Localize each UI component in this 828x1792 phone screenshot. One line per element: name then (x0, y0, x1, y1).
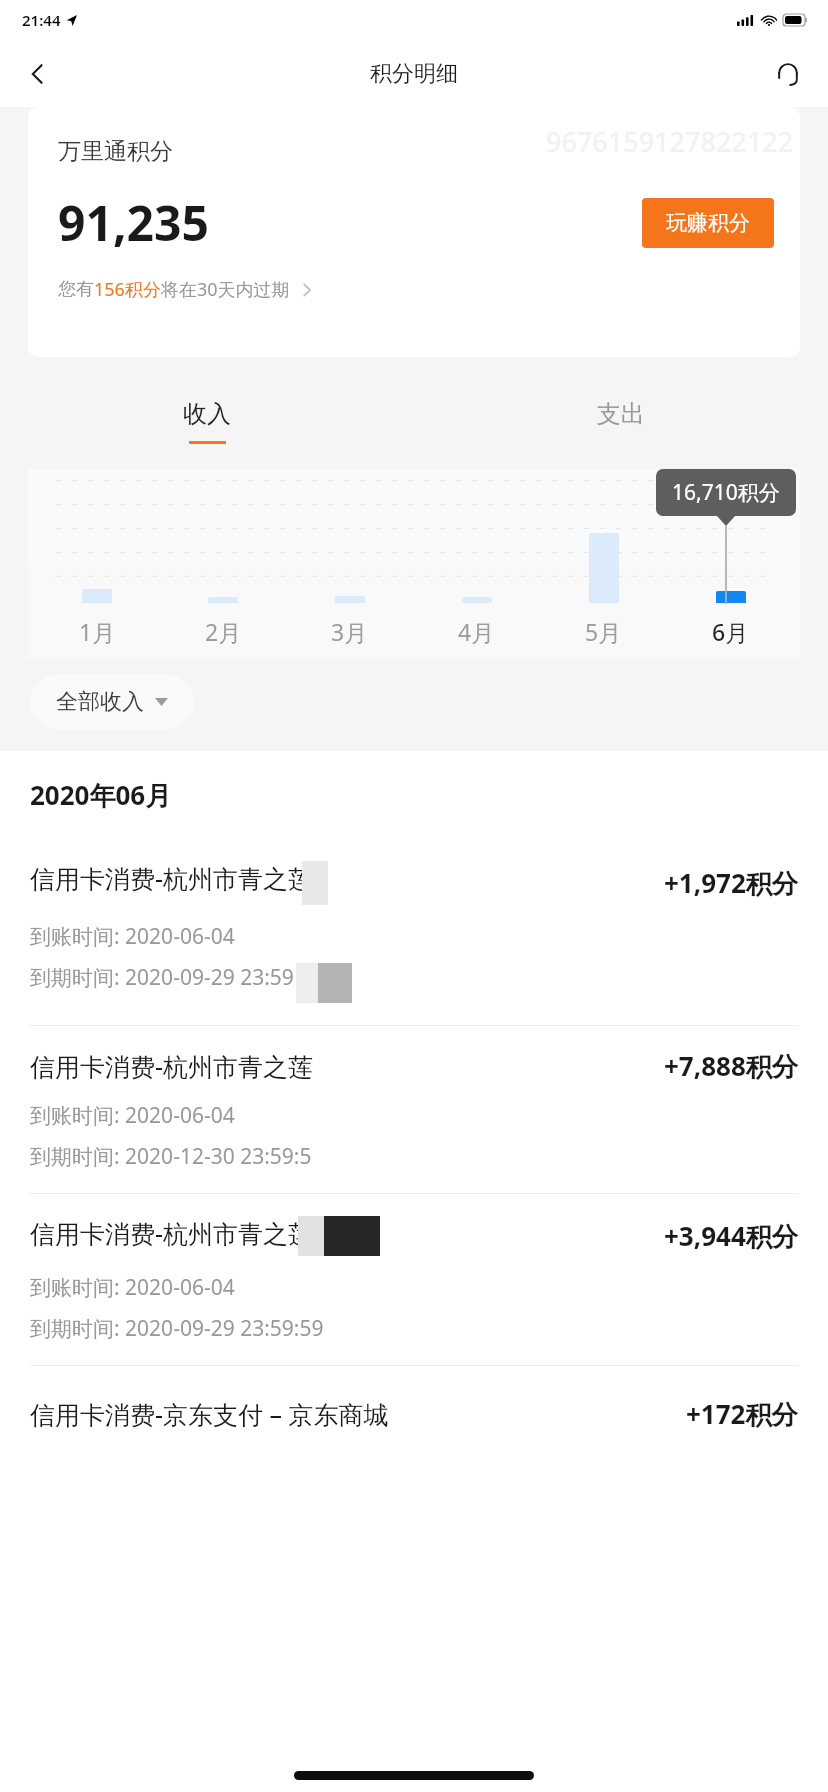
staticText: 将在30天内过期 (161, 277, 290, 302)
button[interactable]: 支出 (414, 383, 828, 459)
staticText: 5月 (585, 616, 622, 647)
button[interactable]: 信用卡消费-京东支付 – 京东商城 (0, 1396, 828, 1432)
button[interactable]: Customer service (760, 46, 816, 102)
staticText: 万里通积分 (58, 137, 173, 166)
staticText: 信用卡消费-京东支付 – 京东商城 (30, 1397, 389, 1431)
button[interactable]: 全部收入 (30, 675, 194, 729)
staticText: +172积分 (686, 1396, 798, 1432)
staticText: 16,710积分 (672, 478, 780, 507)
staticText: 21:44 (22, 10, 61, 30)
staticText: 2月 (205, 616, 242, 647)
staticText: 1月 (79, 616, 116, 647)
button[interactable]: 信用卡消费-杭州市青之莲· (0, 1194, 828, 1365)
staticText: 到期时间: 2020-09-29 23:59:59 (30, 1314, 324, 1343)
staticText: 到期时间: 2020-09-29 23:59 (30, 963, 294, 992)
staticText: 积分明细 (370, 60, 458, 88)
staticText: 156积分 (94, 277, 161, 302)
staticText: 信用卡消费-杭州市青之莲 (30, 1049, 314, 1083)
staticText: 6月 (712, 616, 749, 647)
staticText: 收入 (183, 399, 231, 429)
staticText: 4月 (458, 616, 495, 647)
staticText: 到期时间: 2020-12-30 23:59:5 (30, 1142, 312, 1171)
staticText: 2020年06月 (30, 777, 172, 813)
button[interactable]: 9676159127822122 (28, 107, 800, 357)
button[interactable]: 信用卡消费-杭州市青之莲 (0, 1026, 828, 1193)
staticText: 支出 (597, 399, 645, 429)
button[interactable]: 您有 (58, 277, 314, 302)
button[interactable]: Back (10, 46, 66, 102)
button[interactable]: 玩赚积分 (642, 198, 774, 248)
staticText: 信用卡消费-杭州市青之莲 (30, 861, 314, 895)
staticText: 9676159127822122 (546, 123, 794, 160)
staticText: 到账时间: 2020-06-04 (30, 922, 235, 951)
staticText: +1,972积分 (664, 865, 798, 901)
button[interactable]: 收入 (0, 383, 414, 459)
staticText: 您有 (58, 278, 94, 301)
button[interactable]: 信用卡消费-杭州市青之莲 (0, 839, 828, 1025)
staticText: 到账时间: 2020-06-04 (30, 1273, 235, 1302)
staticText: 到账时间: 2020-06-04 (30, 1101, 235, 1130)
staticText: +3,944积分 (664, 1218, 798, 1254)
staticText: 全部收入 (56, 688, 144, 716)
staticText: +7,888积分 (664, 1048, 798, 1084)
staticText: 3月 (331, 616, 368, 647)
staticText: 信用卡消费-杭州市青之莲· (30, 1216, 320, 1250)
staticText: 玩赚积分 (666, 210, 750, 236)
staticText: 91,235 (58, 190, 209, 255)
